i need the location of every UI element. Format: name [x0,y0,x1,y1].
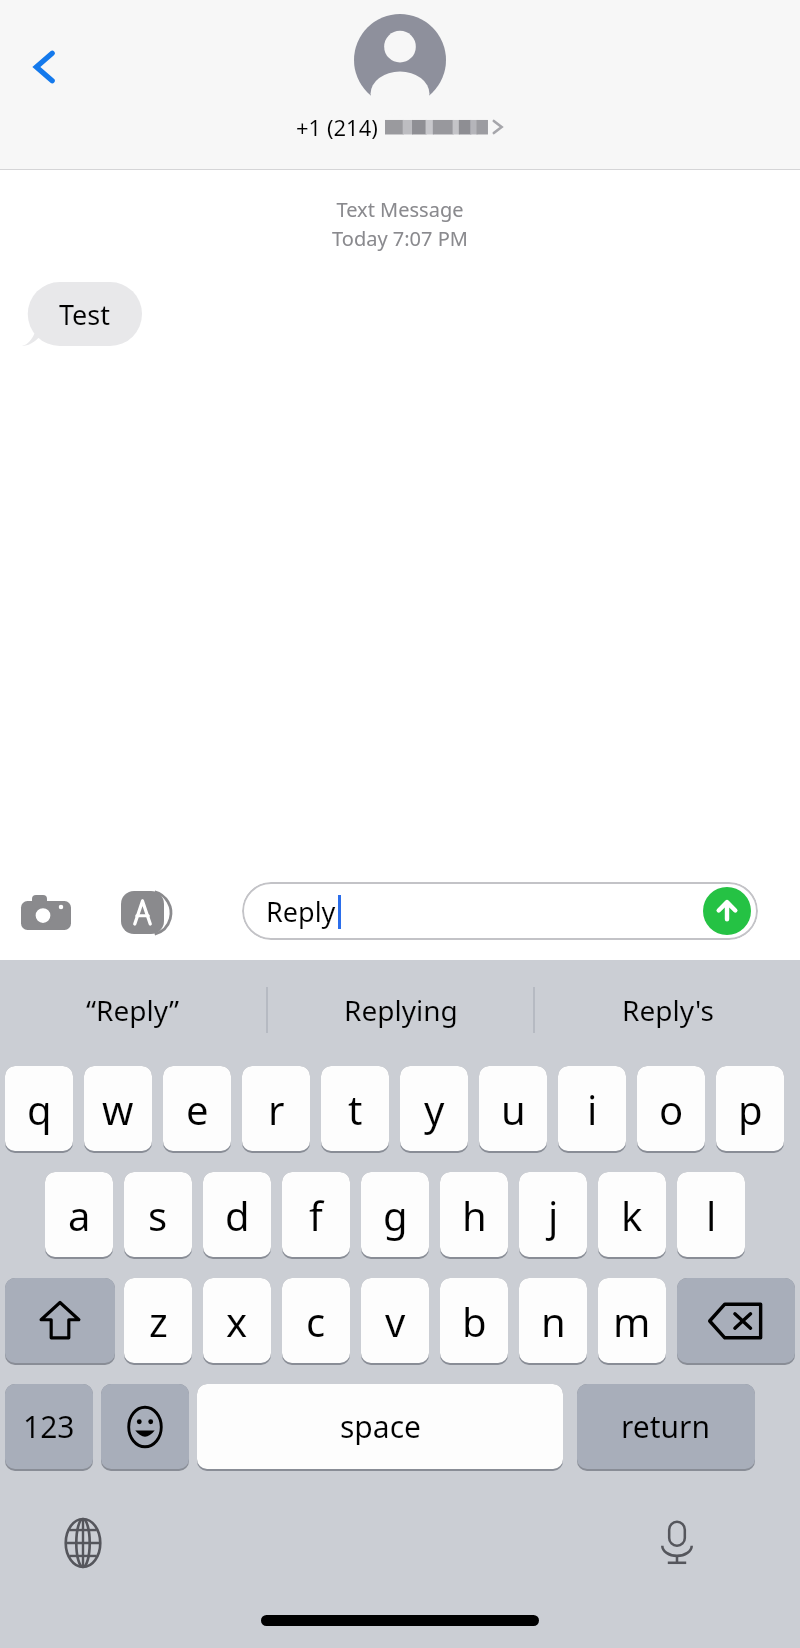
staticText: Test [59,296,111,333]
staticText: v [385,1294,406,1348]
button[interactable]: p [716,1066,784,1151]
staticText: w [102,1082,134,1136]
button[interactable]: Reply's [535,960,800,1060]
button[interactable]: Camera [18,885,74,941]
staticText: return [621,1406,711,1447]
staticText: y [424,1082,445,1136]
button[interactable]: z [124,1278,192,1363]
staticText: Reply's [622,991,714,1029]
button[interactable]: Replying [268,960,533,1060]
button[interactable]: “Reply” [0,960,266,1060]
staticText: c [306,1294,326,1348]
button[interactable]: j [519,1172,587,1257]
staticText: b [462,1294,487,1348]
staticText: space [340,1406,421,1447]
staticText: z [149,1294,168,1348]
button[interactable]: o [637,1066,705,1151]
staticText: n [541,1294,566,1348]
staticText: s [148,1188,168,1242]
button[interactable]: +1 (214) [296,14,504,142]
staticText: o [659,1082,684,1136]
button[interactable]: n [519,1278,587,1363]
button[interactable]: m [598,1278,666,1363]
staticText: r [268,1082,285,1136]
button[interactable]: v [361,1278,429,1363]
staticText: j [548,1188,559,1242]
staticText: h [462,1188,487,1242]
button[interactable]: u [479,1066,547,1151]
button[interactable]: l [677,1172,745,1257]
button[interactable]: space [197,1384,563,1469]
button[interactable]: k [598,1172,666,1257]
button[interactable]: g [361,1172,429,1257]
staticText: 123 [23,1406,75,1447]
button[interactable]: Apps [118,885,174,941]
button[interactable]: f [282,1172,350,1257]
staticText: p [738,1082,763,1136]
button[interactable]: Back [14,36,76,98]
button[interactable]: d [203,1172,271,1257]
button[interactable]: s [124,1172,192,1257]
button[interactable]: Reply [242,882,758,940]
staticText: “Reply” [86,991,180,1029]
button[interactable]: h [440,1172,508,1257]
button[interactable]: w [84,1066,152,1151]
staticText: i [587,1082,598,1136]
button[interactable]: a [45,1172,113,1257]
button[interactable]: Emoji [101,1384,189,1469]
button[interactable]: x [203,1278,271,1363]
button[interactable]: Delete [677,1278,795,1363]
staticText: l [706,1188,717,1242]
staticText: +1 (214) [296,112,378,142]
button[interactable]: Shift [5,1278,115,1363]
button[interactable]: Dictate [646,1512,708,1574]
staticText: Reply [266,893,336,930]
button[interactable]: t [321,1066,389,1151]
button[interactable]: b [440,1278,508,1363]
button[interactable]: c [282,1278,350,1363]
staticText: f [309,1188,323,1242]
button[interactable]: e [163,1066,231,1151]
staticText: a [68,1188,91,1242]
staticText: Today 7:07 PM [0,225,800,252]
staticText: g [383,1188,408,1242]
staticText: m [613,1294,651,1348]
staticText: t [348,1082,363,1136]
staticText: d [225,1188,250,1242]
button[interactable]: y [400,1066,468,1151]
staticText: e [186,1082,209,1136]
staticText: x [226,1294,248,1348]
button[interactable]: i [558,1066,626,1151]
button[interactable]: Change keyboard [52,1512,114,1574]
button[interactable]: Send [703,887,751,935]
staticText: Text Message [0,196,800,223]
staticText: u [501,1082,526,1136]
button[interactable]: r [242,1066,310,1151]
button[interactable]: q [5,1066,73,1151]
button[interactable]: 123 [5,1384,93,1469]
staticText: k [621,1188,643,1242]
staticText: Replying [344,991,458,1029]
button[interactable]: return [577,1384,755,1469]
staticText: q [27,1082,52,1136]
